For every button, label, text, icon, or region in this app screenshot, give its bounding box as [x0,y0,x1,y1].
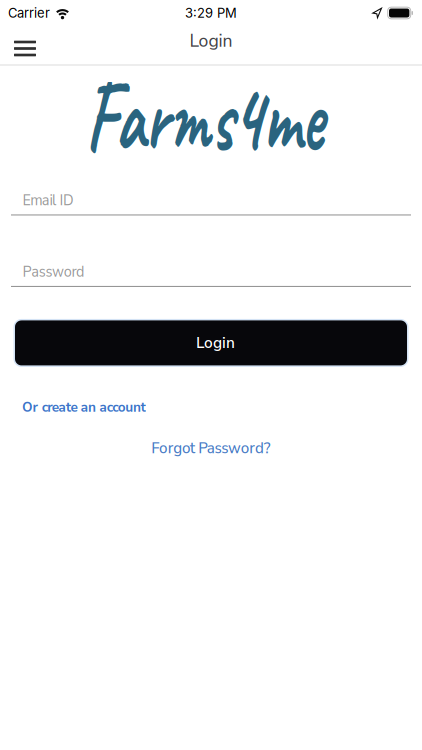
staticText: 3:29 PM [185,5,237,21]
staticText: Forgot Password? [151,437,271,459]
staticText: Or create an account [22,397,145,417]
staticText: Login [196,333,235,353]
button[interactable]: Password [0,261,422,287]
staticText: Password [22,261,84,282]
button[interactable]: Forgot Password? [151,437,271,459]
button[interactable]: Email ID [0,190,422,215]
button[interactable]: Login [13,319,408,367]
staticText: Farms4me [85,74,322,159]
staticText: Email ID [22,190,74,210]
button[interactable]: Or create an account [0,397,422,417]
button[interactable] [0,26,48,64]
staticText: Carrier [8,5,50,21]
staticText: Login [189,29,232,53]
